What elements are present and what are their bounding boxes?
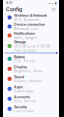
staticText: Lock screen [14, 109, 34, 113]
staticText: Free up space [14, 49, 37, 52]
button[interactable]: Apps [3, 84, 59, 94]
staticText: 26.8 GB used of 128 GB [14, 45, 50, 48]
staticText: Device connection [14, 22, 45, 27]
staticText: Config [6, 6, 22, 12]
button[interactable]: Sound [3, 74, 59, 84]
staticText: Volume, vibration [14, 79, 42, 83]
button[interactable]: Storage [3, 40, 59, 52]
staticText: Sound [14, 75, 24, 79]
button[interactable]: Search [51, 7, 56, 12]
staticText: Battery [14, 55, 25, 59]
staticText: Accounts [14, 95, 30, 99]
staticText: Wi-Fi, Bluetooth [14, 18, 39, 22]
button[interactable]: Battery [3, 54, 59, 64]
staticText: ▪ ▪ ▮ [49, 1, 56, 5]
staticText: Apps [14, 85, 23, 89]
staticText: Security [14, 105, 27, 109]
staticText: Sync, backup [14, 99, 36, 103]
staticText: Wireless & Network [14, 13, 47, 18]
button[interactable]: Security [3, 104, 59, 114]
button[interactable]: Display [3, 64, 59, 74]
staticText: 9:41 [6, 1, 12, 5]
button[interactable]: Notifications [3, 31, 59, 40]
staticText: Brightness, theme [14, 69, 43, 73]
staticText: Notifications [14, 31, 35, 36]
staticText: Bluetooth, cast [14, 27, 38, 31]
staticText: Alerts, badges [14, 36, 37, 40]
staticText: Default apps [14, 89, 34, 93]
staticText: Display [14, 65, 27, 69]
staticText: Storage [14, 40, 26, 44]
button[interactable]: Accounts [3, 94, 59, 104]
staticText: 72% - 6 h left [14, 59, 35, 63]
button[interactable]: Wireless & Network [3, 13, 59, 22]
button[interactable]: Device connection [3, 22, 59, 31]
